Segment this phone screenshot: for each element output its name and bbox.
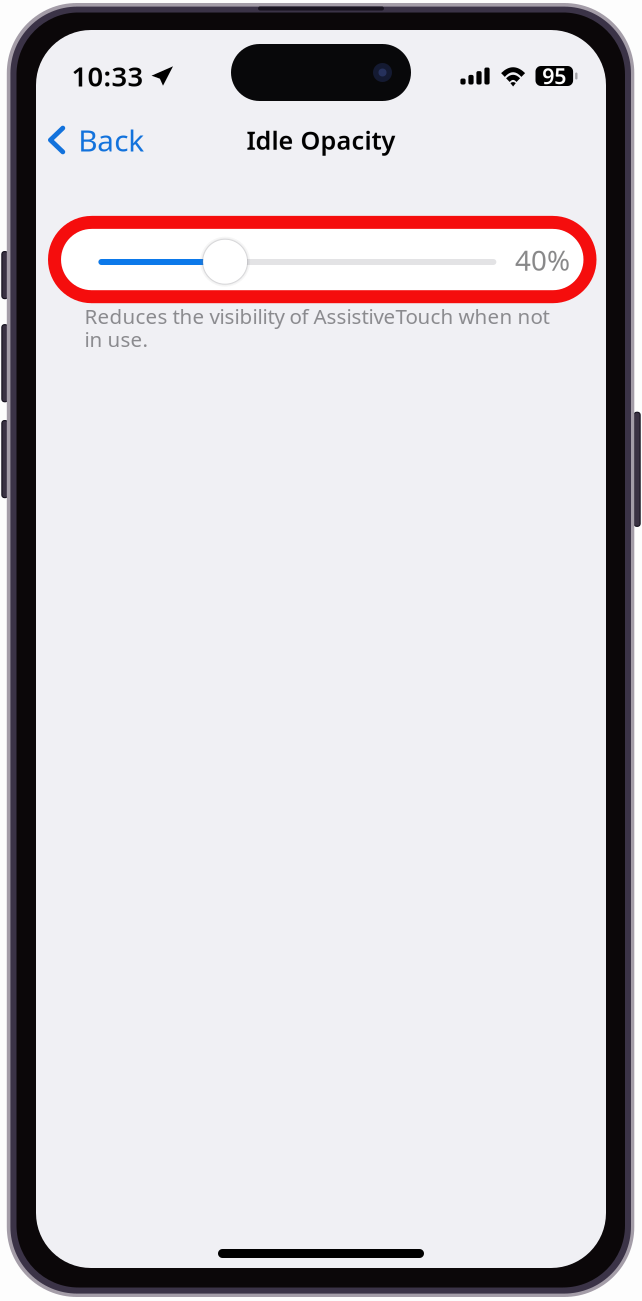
staticText: Idle Opacity bbox=[246, 123, 395, 157]
staticText: 10:33 bbox=[71, 57, 143, 95]
button[interactable]: Back bbox=[48, 114, 172, 166]
staticText: 40% bbox=[515, 241, 570, 279]
staticText: Back bbox=[78, 120, 144, 160]
staticText: 95 bbox=[542, 62, 566, 90]
staticText: Reduces the visibility of AssistiveTouch… bbox=[85, 302, 550, 330]
staticText: in use. bbox=[85, 325, 149, 353]
